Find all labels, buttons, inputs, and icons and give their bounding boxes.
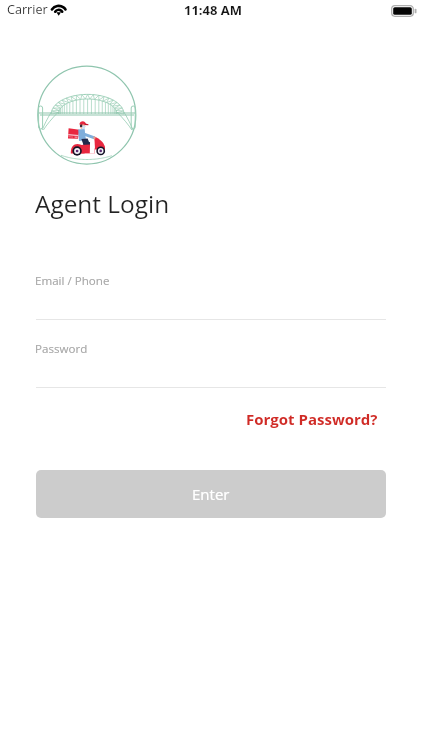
button[interactable]: Forgot Password? bbox=[246, 409, 378, 429]
staticText: Agent Login bbox=[35, 187, 170, 220]
staticText: Email / Phone bbox=[35, 273, 110, 289]
button[interactable]: Enter bbox=[36, 470, 386, 518]
staticText: Forgot Password? bbox=[246, 409, 378, 429]
staticText: Password bbox=[35, 341, 88, 357]
staticText: 11:48 AM bbox=[184, 1, 243, 19]
staticText: Carrier bbox=[7, 1, 48, 18]
staticText: Enter bbox=[192, 484, 230, 504]
